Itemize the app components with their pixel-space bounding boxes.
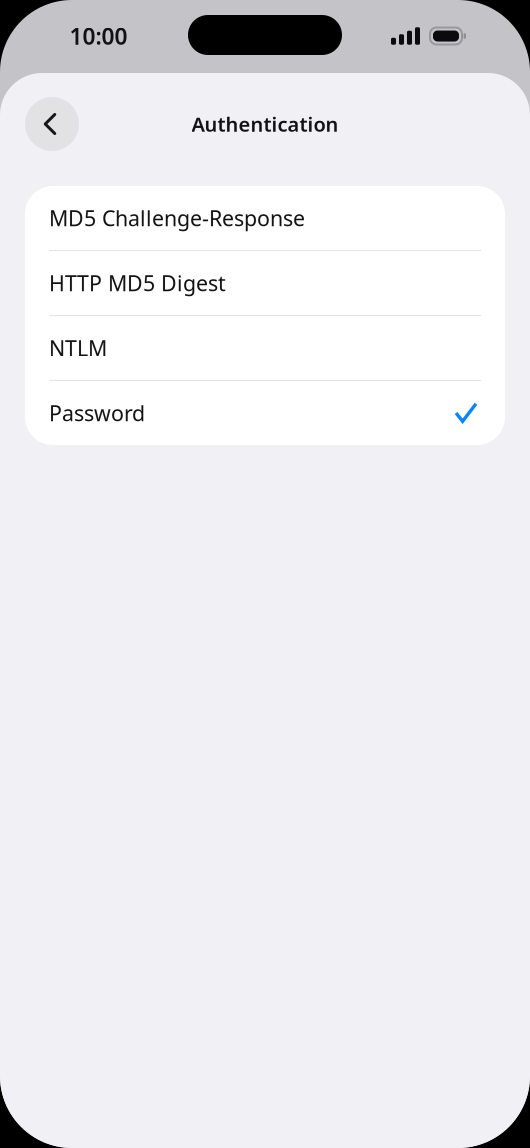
- staticText: Authentication: [191, 111, 338, 137]
- staticText: Password: [49, 399, 145, 427]
- staticText: 10:00: [69, 21, 127, 51]
- staticText: MD5 Challenge-Response: [49, 204, 305, 232]
- button[interactable]: NTLM: [25, 316, 505, 381]
- button[interactable]: Password: [25, 381, 505, 445]
- button[interactable]: HTTP MD5 Digest: [25, 251, 505, 316]
- button[interactable]: MD5 Challenge-Response: [25, 186, 505, 251]
- button[interactable]: Back: [25, 97, 79, 151]
- staticText: NTLM: [49, 334, 107, 362]
- staticText: HTTP MD5 Digest: [49, 269, 226, 297]
